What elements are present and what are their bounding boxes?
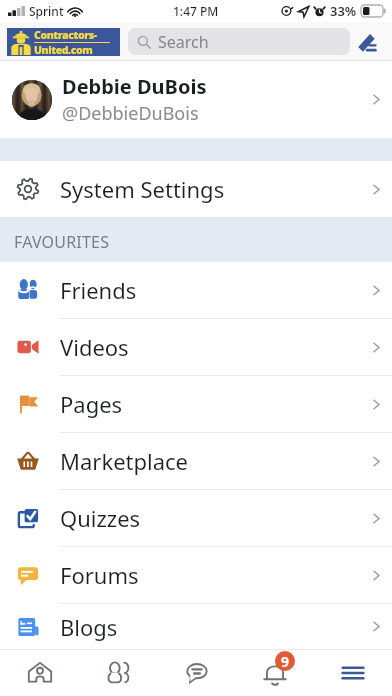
button[interactable]: Compose xyxy=(351,26,383,58)
button[interactable]: Forums xyxy=(0,547,392,603)
staticText: Friends xyxy=(60,275,373,305)
staticText: 33% xyxy=(330,2,357,20)
button[interactable]: Videos xyxy=(0,319,392,375)
staticText: System Settings xyxy=(60,174,373,204)
button[interactable]: Notifications xyxy=(236,650,314,696)
button[interactable]: Home xyxy=(0,650,79,696)
staticText: FAVOURITES xyxy=(14,231,110,253)
staticText: Debbie DuBois xyxy=(62,73,207,100)
staticText: Search xyxy=(158,31,209,53)
staticText: United.com xyxy=(34,43,93,56)
button[interactable]: Search xyxy=(128,28,350,55)
staticText: Videos xyxy=(60,332,373,362)
button[interactable]: Quizzes xyxy=(0,490,392,546)
button[interactable]: Messages xyxy=(158,650,236,696)
staticText: Contractors- xyxy=(34,28,97,42)
button[interactable]: Pages xyxy=(0,376,392,432)
button[interactable]: System Settings xyxy=(0,161,392,217)
staticText: Marketplace xyxy=(60,446,373,476)
staticText: 1:47 PM xyxy=(173,3,219,19)
staticText: Quizzes xyxy=(60,503,373,533)
button[interactable]: Friends xyxy=(79,650,158,696)
button[interactable]: Contractors- xyxy=(7,28,120,56)
staticText: Blogs xyxy=(60,612,373,642)
staticText: Pages xyxy=(60,389,373,419)
button[interactable]: Debbie DuBois xyxy=(0,61,392,138)
staticText: @DebbieDuBois xyxy=(62,101,199,126)
button[interactable]: Friends xyxy=(0,262,392,318)
staticText: Forums xyxy=(60,560,373,590)
button[interactable]: Marketplace xyxy=(0,433,392,489)
staticText: 9 xyxy=(281,652,290,671)
button[interactable]: Menu xyxy=(314,650,392,696)
staticText: Sprint xyxy=(29,3,64,19)
button[interactable]: Blogs xyxy=(0,604,392,649)
